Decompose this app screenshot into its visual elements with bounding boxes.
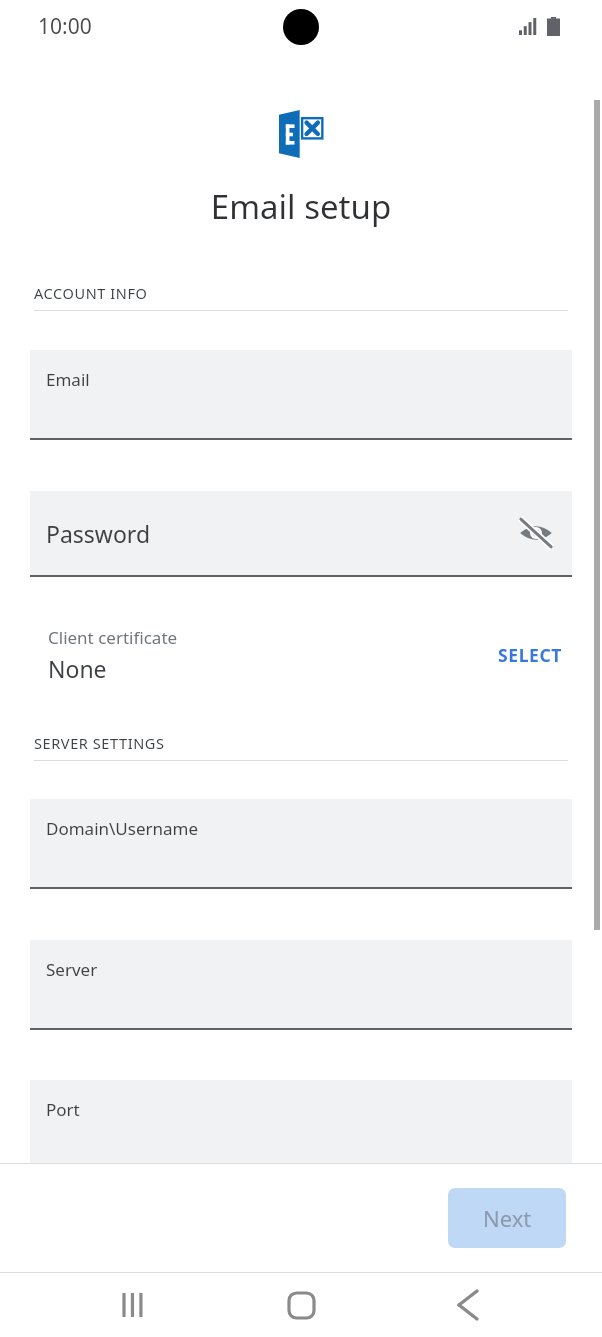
button[interactable]: Client certificate (0, 617, 602, 693)
staticText: None (48, 653, 107, 684)
button[interactable]: Recents (108, 1279, 160, 1331)
staticText: Password (46, 518, 151, 549)
staticText: Email setup (0, 184, 602, 229)
staticText: Server (46, 958, 98, 981)
staticText: Domain\Username (46, 817, 199, 840)
staticText: SERVER SETTINGS (34, 733, 165, 753)
button[interactable]: SELECT (492, 637, 568, 673)
staticText: Next (483, 1203, 532, 1233)
button[interactable]: Server (30, 940, 572, 1030)
staticText: Email (46, 368, 90, 391)
button[interactable]: Home (275, 1279, 327, 1331)
button[interactable]: Email (30, 350, 572, 440)
other: Show password (518, 518, 554, 548)
staticText: Client certificate (48, 626, 178, 649)
staticText: Port (46, 1098, 80, 1121)
button[interactable]: Domain\Username (30, 799, 572, 889)
button[interactable]: Back (442, 1279, 494, 1331)
staticText: SELECT (498, 643, 562, 667)
staticText: 10:00 (38, 12, 92, 41)
button[interactable]: Port (30, 1080, 572, 1163)
staticText: ACCOUNT INFO (34, 283, 148, 303)
button[interactable]: Next (448, 1188, 566, 1248)
button[interactable]: Password (30, 491, 572, 577)
